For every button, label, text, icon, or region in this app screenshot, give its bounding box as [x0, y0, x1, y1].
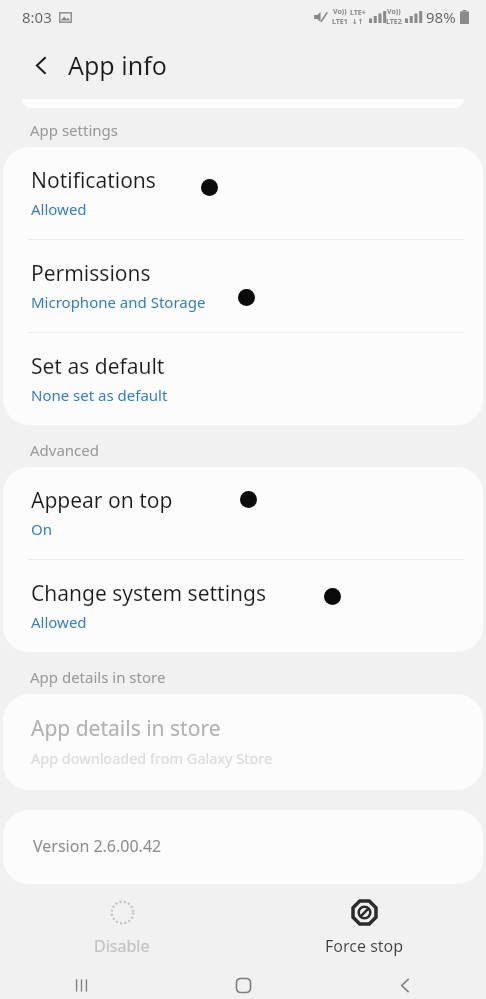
button[interactable]: Set as default: [3, 333, 483, 425]
staticText: App details in store: [30, 667, 166, 687]
staticText: Advanced: [30, 440, 100, 460]
staticText: App downloaded from Galaxy Store: [31, 748, 273, 768]
staticText: Appear on top: [31, 486, 173, 515]
button[interactable]: Back: [324, 972, 486, 999]
button[interactable]: Change system settings: [3, 560, 483, 652]
staticText: Allowed: [31, 612, 87, 632]
button[interactable]: Permissions: [3, 240, 483, 332]
staticText: Vo)): [387, 7, 401, 17]
staticText: Set as default: [31, 352, 165, 381]
button[interactable]: Notifications: [3, 147, 483, 239]
staticText: ↓↑: [352, 18, 364, 26]
staticText: Notifications: [31, 166, 156, 195]
button[interactable]: Appear on top: [3, 467, 483, 559]
staticText: LTE+: [350, 8, 366, 18]
button[interactable]: Force stop: [299, 893, 430, 963]
staticText: 98%: [426, 7, 456, 27]
staticText: App settings: [30, 120, 118, 140]
staticText: Allowed: [31, 199, 87, 219]
staticText: Version 2.6.00.42: [33, 835, 162, 857]
staticText: Force stop: [325, 935, 404, 957]
staticText: 8:03: [22, 7, 52, 27]
staticText: App details in store: [31, 714, 221, 743]
staticText: LTE2: [386, 17, 402, 27]
button[interactable]: Home: [162, 972, 324, 999]
staticText: Disable: [94, 935, 150, 957]
staticText: Change system settings: [31, 579, 267, 608]
button[interactable]: Disable: [68, 893, 176, 963]
staticText: On: [31, 519, 52, 539]
button[interactable]: Version 2.6.00.42: [3, 810, 483, 884]
button[interactable]: Recents: [0, 972, 162, 999]
button[interactable]: App details in store: [3, 694, 483, 790]
staticText: App info: [68, 48, 167, 82]
staticText: None set as default: [31, 385, 168, 405]
staticText: LTE1: [332, 17, 348, 27]
staticText: Permissions: [31, 259, 151, 288]
staticText: Vo)): [333, 7, 347, 17]
staticText: Microphone and Storage: [31, 292, 206, 312]
button[interactable]: Back: [22, 46, 60, 84]
